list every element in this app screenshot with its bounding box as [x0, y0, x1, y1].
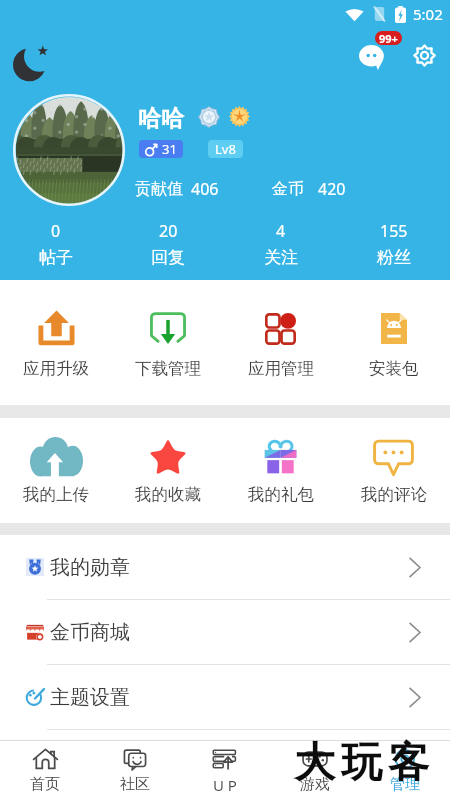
staticText: 关注 — [264, 247, 298, 268]
staticText: 大玩客 — [291, 737, 432, 789]
button[interactable]: Night mode — [9, 36, 57, 84]
staticText: 社区 — [120, 775, 150, 794]
staticText: 我的评论 — [361, 484, 427, 505]
staticText: 应用管理 — [248, 358, 314, 379]
button[interactable]: 应用管理 — [224, 280, 337, 405]
button[interactable]: 我的收藏 — [112, 418, 224, 523]
staticText: 20 — [159, 220, 178, 242]
button[interactable]: 31 — [139, 140, 183, 158]
button[interactable]: Messages — [349, 32, 397, 80]
staticText: 帖子 — [39, 247, 73, 268]
staticText: 贡献值 — [135, 179, 183, 199]
staticText: Lv8 — [215, 140, 236, 158]
button[interactable]: U P — [180, 741, 270, 800]
staticText: 应用升级 — [23, 358, 89, 379]
staticText: 安装包 — [369, 358, 419, 379]
staticText: 粉丝 — [377, 247, 411, 268]
staticText: 管理 — [390, 775, 420, 794]
staticText: 下载管理 — [135, 358, 201, 379]
staticText: 406 — [191, 178, 219, 200]
button[interactable]: 安装包 — [337, 280, 450, 405]
button[interactable]: 我的上传 — [0, 418, 112, 523]
staticText: 155 — [380, 220, 408, 242]
staticText: 99+ — [379, 31, 398, 45]
staticText: 回复 — [151, 247, 185, 268]
staticText: 我的礼包 — [248, 484, 314, 505]
staticText: 主题设置 — [50, 685, 130, 710]
staticText: 我的上传 — [23, 484, 89, 505]
button[interactable]: 首页 — [0, 741, 90, 800]
button[interactable]: 金币商城 — [0, 600, 450, 664]
button[interactable]: 社区 — [90, 741, 180, 800]
staticText: 金币 — [272, 179, 304, 199]
staticText: 游戏 — [300, 775, 330, 794]
staticText: 4 — [276, 220, 286, 242]
staticText: 首页 — [30, 775, 60, 794]
button[interactable]: 管理 — [360, 741, 450, 800]
button[interactable]: 我的礼包 — [224, 418, 337, 523]
button[interactable]: 下载管理 — [112, 280, 224, 405]
staticText: U P — [213, 775, 237, 795]
button[interactable]: Lv8 — [208, 140, 243, 158]
button[interactable]: 应用升级 — [0, 280, 112, 405]
button[interactable]: 我的评论 — [337, 418, 450, 523]
staticText: 金币商城 — [50, 620, 130, 645]
button[interactable]: 155 — [337, 216, 450, 272]
button[interactable]: 游戏 — [270, 741, 360, 800]
staticText: 我的收藏 — [135, 484, 201, 505]
button[interactable]: 20 — [112, 216, 224, 272]
button[interactable]: 4 — [224, 216, 337, 272]
staticText: 420 — [318, 178, 346, 200]
staticText: 0 — [51, 220, 61, 242]
staticText: 哈哈 — [138, 104, 184, 133]
staticText: 31 — [162, 140, 177, 158]
button[interactable]: 我的勋章 — [0, 535, 450, 599]
button[interactable]: 0 — [0, 216, 112, 272]
staticText: 5:02 — [413, 4, 443, 24]
button[interactable]: 主题设置 — [0, 665, 450, 729]
staticText: 我的勋章 — [50, 555, 130, 580]
button[interactable]: Settings — [402, 33, 447, 78]
button[interactable]: Avatar — [13, 94, 125, 206]
